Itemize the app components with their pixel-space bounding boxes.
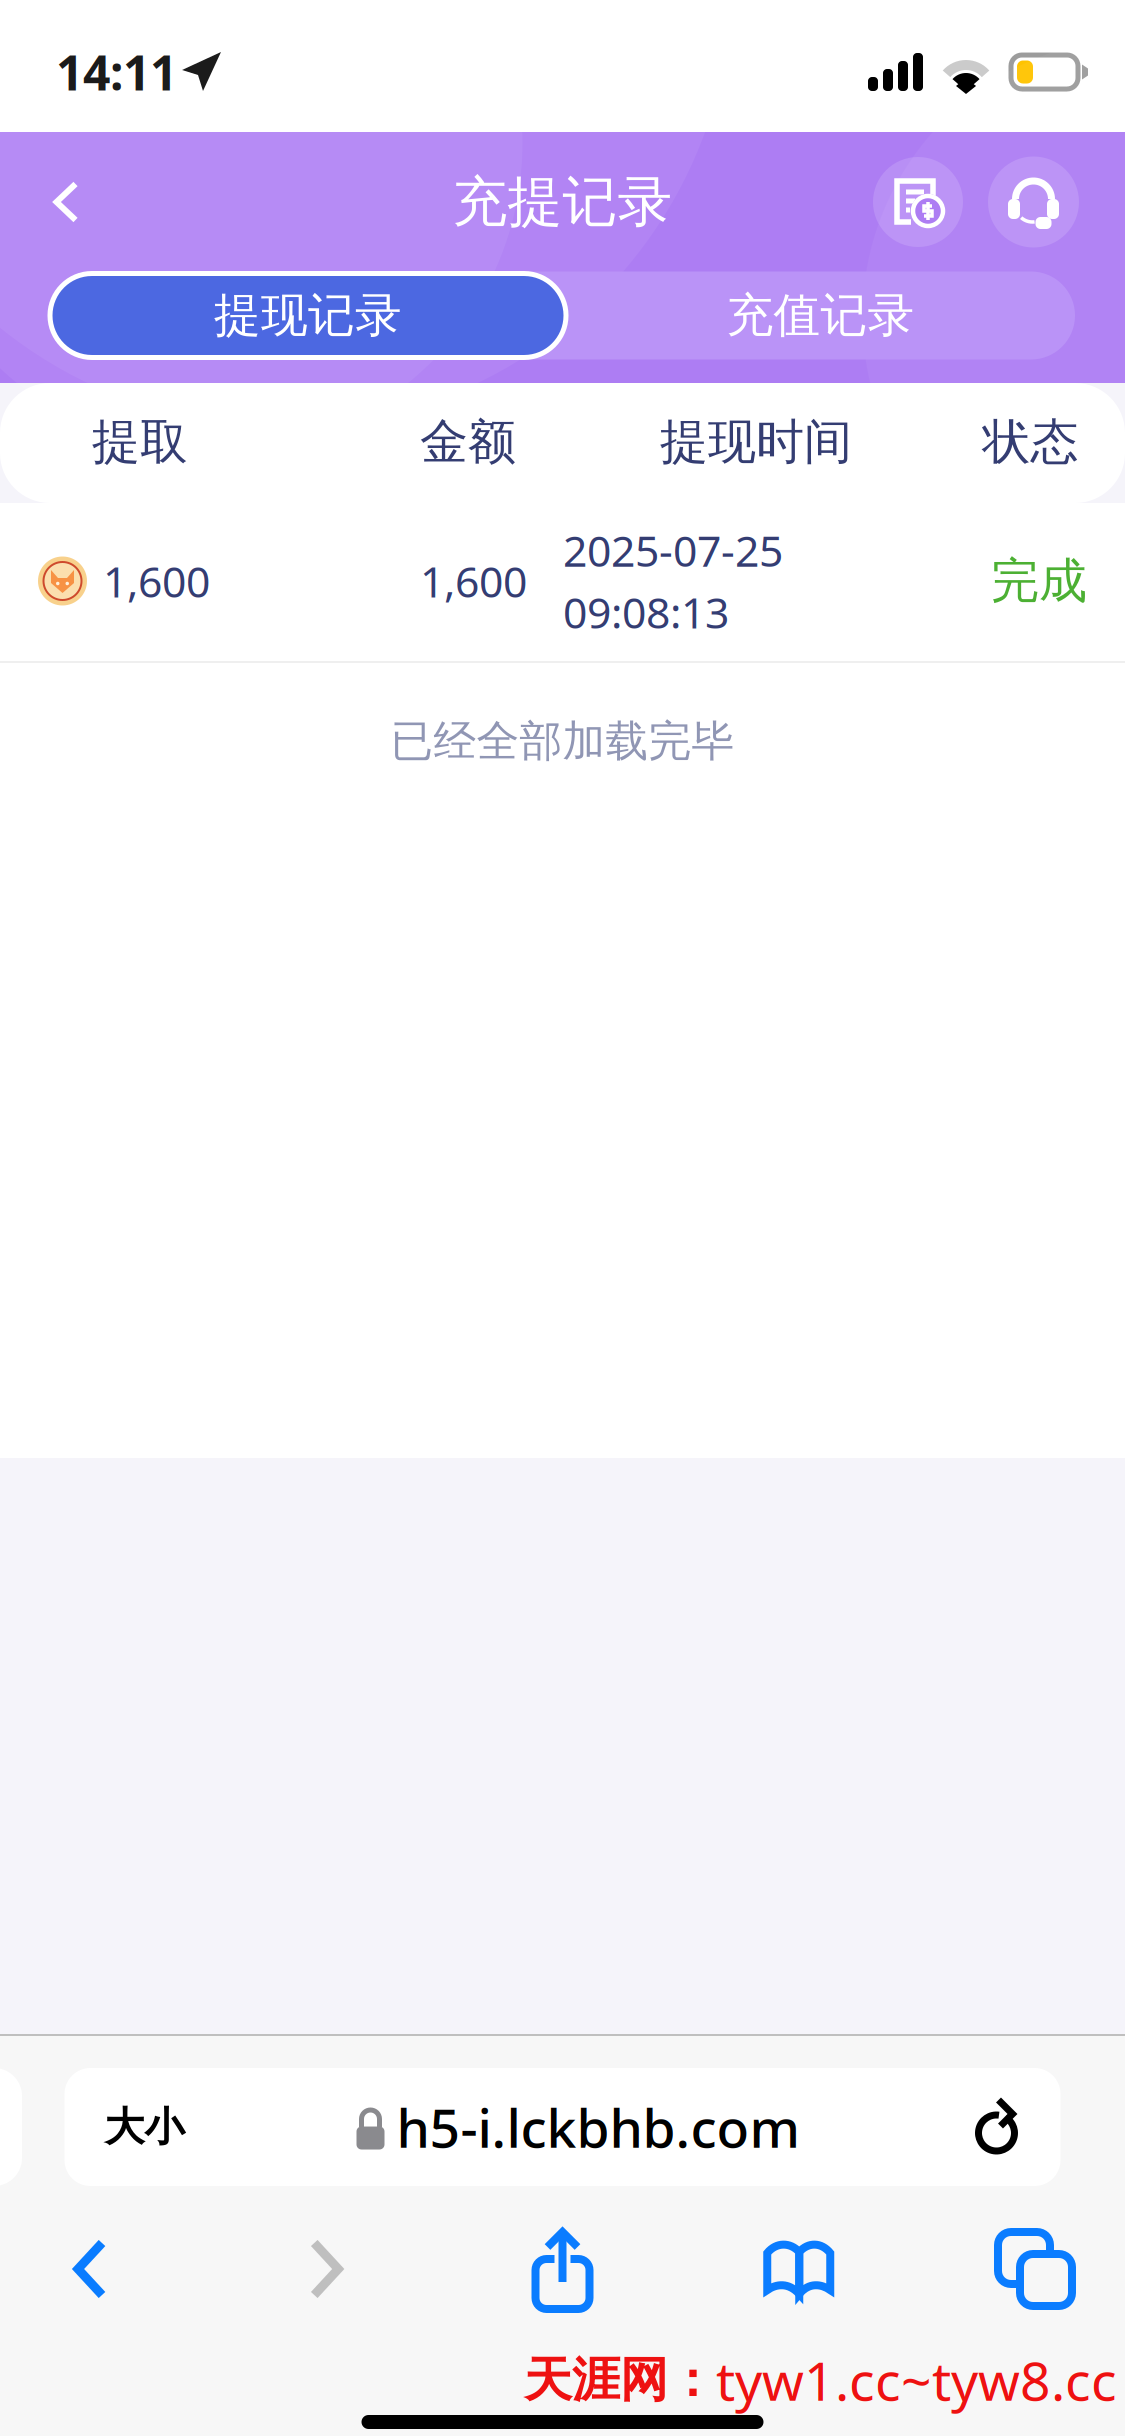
staticText: 14:11 xyxy=(56,40,177,104)
staticText: 1,600 xyxy=(420,553,527,609)
button[interactable]: Share xyxy=(474,2226,650,2312)
staticText: 大小 xyxy=(104,2102,184,2151)
staticText: 充值记录 xyxy=(726,287,914,344)
staticText: 2025-07-25 xyxy=(563,522,783,578)
staticText: 09:08:13 xyxy=(563,583,729,640)
button[interactable]: Tabs xyxy=(947,2226,1123,2312)
button[interactable]: 提现记录 xyxy=(50,271,566,359)
staticText: 天涯网： xyxy=(524,2350,716,2409)
staticText: tyw1.cc~tyw8.cc xyxy=(716,2345,1117,2415)
button[interactable]: Bill records xyxy=(873,147,963,257)
staticText: 提现时间 xyxy=(660,412,852,471)
button[interactable]: Forward xyxy=(238,2226,414,2312)
button[interactable]: Back xyxy=(0,147,132,257)
staticText: 完成 xyxy=(991,551,1087,610)
staticText: 提取 xyxy=(92,412,188,471)
staticText: 状态 xyxy=(982,412,1078,471)
button[interactable]: Customer service xyxy=(963,147,1079,257)
staticText: 已经全部加载完毕 xyxy=(390,715,734,767)
button[interactable]: Back xyxy=(2,2226,178,2312)
staticText: h5-i.lckbhb.com xyxy=(396,2092,800,2162)
staticText: 1,600 xyxy=(103,553,210,609)
button[interactable]: 充值记录 xyxy=(566,271,1075,359)
staticText: 金额 xyxy=(420,412,516,471)
staticText: 充提记录 xyxy=(452,168,672,235)
staticText: 提现记录 xyxy=(214,287,402,344)
button[interactable]: Bookmarks xyxy=(711,2226,887,2312)
button[interactable]: 大小 xyxy=(64,2068,1060,2186)
